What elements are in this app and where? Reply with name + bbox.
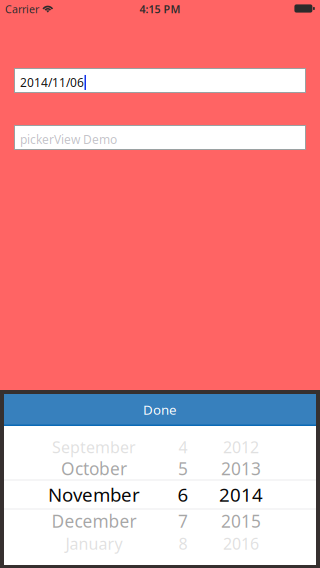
button[interactable]: 2014/11/06 [14,68,306,93]
staticText: 2014 [219,482,263,507]
button[interactable]: pickerView Demo [14,125,306,150]
staticText: 2014/11/06 [20,74,84,90]
staticText: September [52,436,136,458]
staticText: December [51,509,136,532]
staticText: Done [143,401,177,418]
staticText: 4 [178,436,187,458]
staticText: Carrier [5,2,39,16]
staticText: 2012 [223,436,259,458]
staticText: 7 [178,509,188,532]
button[interactable]: Done [4,394,316,426]
staticText: 4:15 PM [139,2,180,16]
staticText: 2016 [223,533,259,554]
staticText: 2013 [221,457,261,480]
staticText: January [65,533,122,554]
staticText: November [48,482,140,507]
button[interactable]: Date picker [4,426,316,565]
staticText: 5 [178,457,188,480]
staticText: October [61,457,127,480]
staticText: 6 [177,482,188,507]
staticText: pickerView Demo [20,131,117,147]
staticText: 8 [178,533,187,554]
staticText: 2015 [221,509,261,532]
